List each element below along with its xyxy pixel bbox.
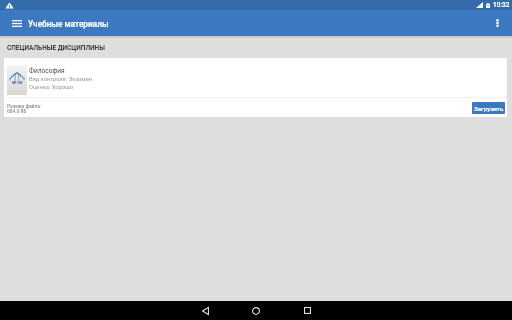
staticText: Размер файла: — [7, 103, 42, 109]
button[interactable]: Back — [188, 301, 222, 320]
staticText: Загрузить — [474, 105, 504, 112]
button[interactable]: Home — [239, 301, 273, 320]
button[interactable]: Open navigation drawer — [6, 10, 27, 36]
staticText: 684.0 Кб — [7, 108, 27, 114]
staticText: МГЭИ — [12, 81, 23, 85]
staticText: Оценка: Хорошо — [29, 84, 74, 91]
staticText: СПЕЦИАЛЬНЫЕ ДИСЦИПЛИНЫ — [7, 44, 105, 52]
button[interactable]: МГЭИ — [4, 58, 507, 97]
button[interactable]: Recent apps — [290, 301, 324, 320]
staticText: Вид контроля: Экзамен — [29, 76, 92, 83]
button[interactable]: More options — [486, 10, 508, 36]
staticText: Учебные материалы — [28, 19, 109, 29]
staticText: Философия — [29, 67, 65, 75]
button[interactable]: Загрузить — [472, 102, 505, 114]
staticText: 10:32 — [493, 1, 510, 9]
